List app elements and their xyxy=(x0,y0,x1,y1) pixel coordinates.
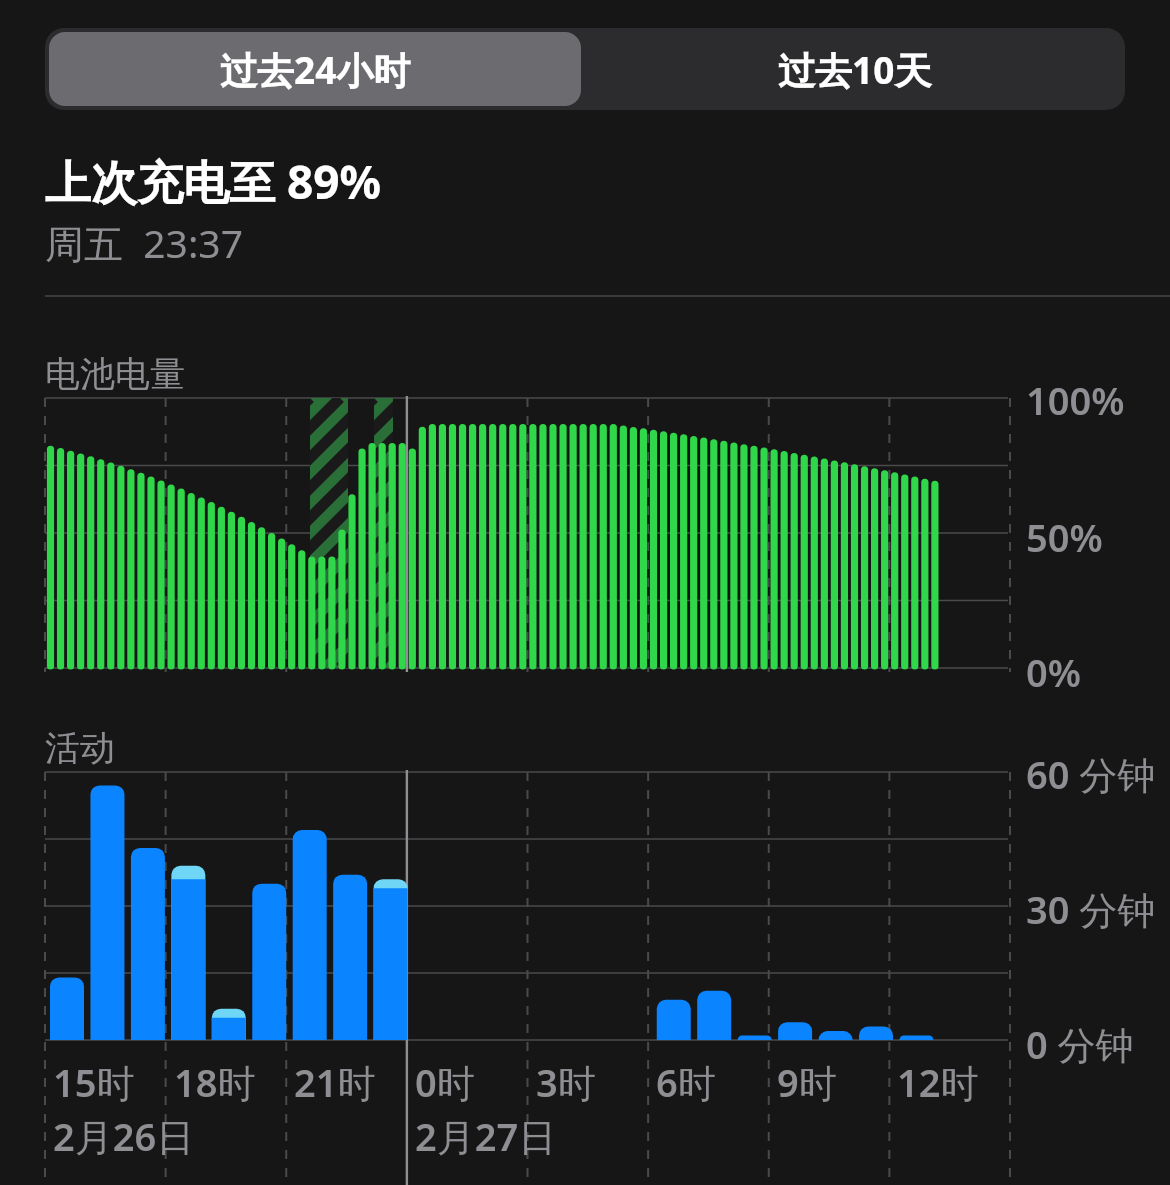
button[interactable]: 过去10天 xyxy=(585,28,1125,110)
button[interactable]: 过去24小时 xyxy=(49,32,581,106)
staticText: 上次充电至 89% xyxy=(45,150,382,213)
staticText: 电池电量 xyxy=(45,352,185,396)
staticText: 0% xyxy=(1026,646,1081,698)
staticText: 21时 xyxy=(294,1056,376,1108)
staticText: 50% xyxy=(1026,511,1103,563)
staticText: 过去24小时 xyxy=(220,44,411,95)
staticText: 2月27日 xyxy=(415,1110,557,1162)
staticText: 0时 xyxy=(415,1056,475,1108)
staticText: 9时 xyxy=(777,1056,837,1108)
staticText: 3时 xyxy=(536,1056,596,1108)
staticText: 6时 xyxy=(656,1056,716,1108)
staticText: 60 分钟 xyxy=(1026,748,1156,800)
staticText: 活动 xyxy=(45,726,115,770)
staticText: 100% xyxy=(1026,374,1125,426)
staticText: 15时 xyxy=(53,1056,135,1108)
staticText: 18时 xyxy=(174,1056,256,1108)
staticText: 周五 23:37 xyxy=(45,216,243,269)
staticText: 0 分钟 xyxy=(1026,1018,1134,1070)
staticText: 2月26日 xyxy=(53,1110,195,1162)
staticText: 30 分钟 xyxy=(1026,883,1156,935)
staticText: 过去10天 xyxy=(778,44,932,95)
staticText: 12时 xyxy=(897,1056,979,1108)
